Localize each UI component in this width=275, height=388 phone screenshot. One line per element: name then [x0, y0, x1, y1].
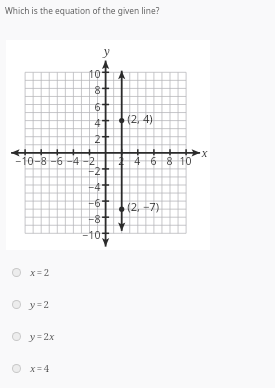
staticText: y = 2x	[30, 330, 55, 343]
staticText: x = 4	[30, 362, 50, 375]
button[interactable]: y = 2x	[0, 320, 275, 352]
staticText: y = 2	[30, 298, 49, 311]
button[interactable]: y = 2	[0, 288, 275, 320]
staticText: Which is the equation of the given line?	[5, 5, 160, 16]
button[interactable]: x = 4	[0, 352, 275, 384]
staticText: x = 2	[30, 266, 50, 279]
button[interactable]: x = 2	[0, 256, 275, 288]
